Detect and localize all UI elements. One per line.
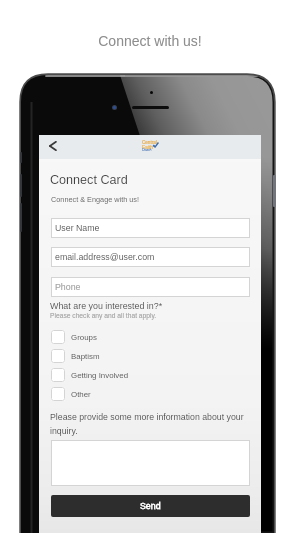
button[interactable]: Phone	[51, 277, 250, 297]
staticText: Phone	[55, 282, 81, 292]
staticText: Connect with us!	[0, 33, 300, 49]
button[interactable]: Baptism	[51, 349, 250, 363]
button[interactable]: Getting Involved	[51, 368, 250, 382]
staticText: Other	[71, 390, 91, 399]
button[interactable]	[51, 440, 250, 486]
staticText: Getting Involved	[71, 371, 129, 380]
staticText: Connect Card	[50, 173, 128, 187]
button[interactable]: Back	[41, 135, 63, 157]
button[interactable]: Send	[51, 495, 250, 517]
staticText: email.address@user.com	[55, 252, 155, 262]
button[interactable]: email.address@user.com	[51, 247, 250, 267]
staticText: Baptism	[71, 352, 100, 361]
staticText: Central	[142, 140, 157, 145]
staticText: What are you interested in?*	[50, 301, 163, 311]
staticText: Faith	[142, 144, 154, 150]
staticText: User Name	[55, 223, 100, 233]
staticText: Please check any and all that apply.	[50, 312, 157, 319]
button[interactable]: Other	[51, 387, 250, 401]
staticText: Groups	[71, 333, 97, 342]
button[interactable]: Groups	[51, 330, 250, 344]
button[interactable]: User Name	[51, 218, 250, 238]
staticText: Church	[142, 148, 152, 151]
staticText: Send	[140, 501, 161, 511]
staticText: Connect & Engage with us!	[51, 195, 140, 203]
staticText: Please provide some more information abo…	[50, 412, 252, 435]
